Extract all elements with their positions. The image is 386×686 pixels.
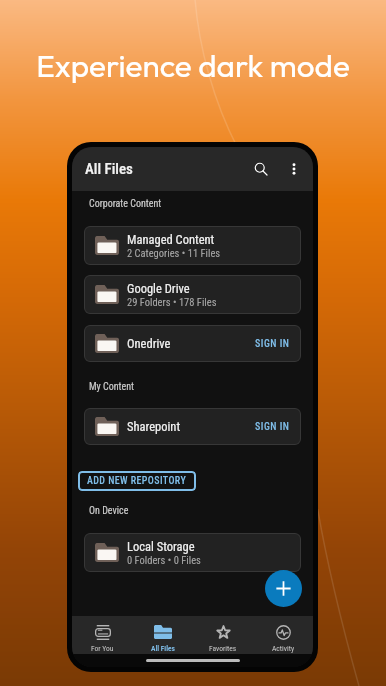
staticText: All Files xyxy=(85,160,133,178)
staticText: For You xyxy=(91,644,114,653)
staticText: SIGN IN xyxy=(255,421,290,433)
staticText: My Content xyxy=(89,381,134,393)
staticText: Corporate Content xyxy=(89,198,162,210)
staticText: ADD NEW REPOSITORY xyxy=(87,475,187,487)
staticText: Onedrive xyxy=(127,336,171,351)
button[interactable]: Local Storage xyxy=(84,533,301,572)
button[interactable]: Managed Content xyxy=(84,226,301,265)
staticText: SIGN IN xyxy=(255,338,290,350)
button[interactable]: Add xyxy=(265,570,302,607)
staticText: All Files xyxy=(151,644,175,653)
staticText: 2 Categories • 11 Files xyxy=(127,247,221,259)
button[interactable]: Activity xyxy=(253,618,313,653)
staticText: 29 Folders • 178 Files xyxy=(127,296,217,308)
button[interactable]: Onedrive xyxy=(84,325,301,362)
button[interactable]: ADD NEW REPOSITORY xyxy=(78,471,196,491)
button[interactable]: All Files xyxy=(133,618,193,653)
button[interactable]: Google Drive xyxy=(84,275,301,314)
staticText: Local Storage xyxy=(127,539,195,554)
staticText: Managed Content xyxy=(127,232,215,247)
staticText: 0 Folders • 0 Files xyxy=(127,554,201,566)
button[interactable]: Favorites xyxy=(193,618,253,653)
button[interactable]: Search xyxy=(248,156,274,182)
staticText: On Device xyxy=(89,505,129,517)
staticText: Favorites xyxy=(209,644,237,653)
staticText: Google Drive xyxy=(127,281,190,296)
staticText: Experience dark mode xyxy=(0,45,386,85)
staticText: Activity xyxy=(272,644,295,653)
staticText: Sharepoint xyxy=(127,419,181,434)
button[interactable]: Sharepoint xyxy=(84,408,301,445)
button[interactable]: For You xyxy=(72,618,133,653)
button[interactable]: More options xyxy=(282,157,306,181)
